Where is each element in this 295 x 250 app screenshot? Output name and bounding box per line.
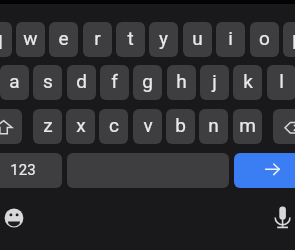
button[interactable]: Shift: [0, 109, 22, 144]
button[interactable]: u: [183, 22, 212, 57]
staticText: p: [292, 27, 295, 49]
staticText: d: [76, 70, 87, 92]
button[interactable]: Backspace: [273, 109, 295, 144]
button[interactable]: d: [67, 65, 96, 100]
button[interactable]: t: [116, 22, 145, 57]
button[interactable]: v: [133, 109, 162, 144]
staticText: a: [9, 70, 20, 92]
staticText: s: [43, 70, 53, 92]
staticText: f: [111, 70, 118, 92]
staticText: u: [192, 27, 203, 49]
button[interactable]: j: [200, 65, 229, 100]
staticText: o: [259, 27, 270, 49]
button[interactable]: z: [33, 109, 62, 144]
staticText: k: [243, 70, 253, 92]
staticText: v: [143, 114, 153, 136]
staticText: y: [159, 27, 168, 49]
button[interactable]: o: [250, 22, 279, 57]
button[interactable]: e: [49, 22, 78, 57]
staticText: h: [176, 70, 187, 92]
staticText: b: [175, 114, 186, 136]
button[interactable]: w: [16, 22, 45, 57]
button[interactable]: p: [283, 22, 295, 57]
button[interactable]: i: [216, 22, 245, 57]
staticText: m: [239, 114, 256, 136]
staticText: g: [142, 70, 153, 92]
staticText: e: [58, 27, 69, 49]
button[interactable]: h: [167, 65, 196, 100]
button[interactable]: b: [166, 109, 195, 144]
staticText: 123: [10, 161, 36, 179]
button[interactable]: a: [0, 65, 29, 100]
staticText: t: [127, 27, 134, 49]
staticText: l: [279, 70, 284, 92]
staticText: w: [23, 27, 38, 49]
staticText: r: [94, 27, 101, 49]
button[interactable]: f: [100, 65, 129, 100]
button[interactable]: s: [33, 65, 62, 100]
staticText: q: [0, 27, 3, 49]
button[interactable]: x: [66, 109, 95, 144]
button[interactable]: c: [99, 109, 128, 144]
button[interactable]: Voice input: [272, 205, 292, 229]
button[interactable]: q: [0, 22, 12, 57]
button[interactable]: 123: [0, 153, 62, 188]
staticText: i: [228, 27, 233, 49]
staticText: z: [43, 114, 53, 136]
staticText: j: [212, 70, 217, 92]
button[interactable]: Enter: [234, 153, 295, 188]
staticText: n: [208, 114, 219, 136]
button[interactable]: y: [149, 22, 178, 57]
button[interactable]: k: [233, 65, 262, 100]
button[interactable]: l: [267, 65, 295, 100]
staticText: x: [76, 114, 86, 136]
button[interactable]: n: [199, 109, 228, 144]
staticText: c: [109, 114, 119, 136]
button[interactable]: Emoji keyboard: [4, 208, 24, 228]
button[interactable]: r: [83, 22, 112, 57]
button[interactable]: m: [233, 109, 262, 144]
button[interactable]: g: [133, 65, 162, 100]
